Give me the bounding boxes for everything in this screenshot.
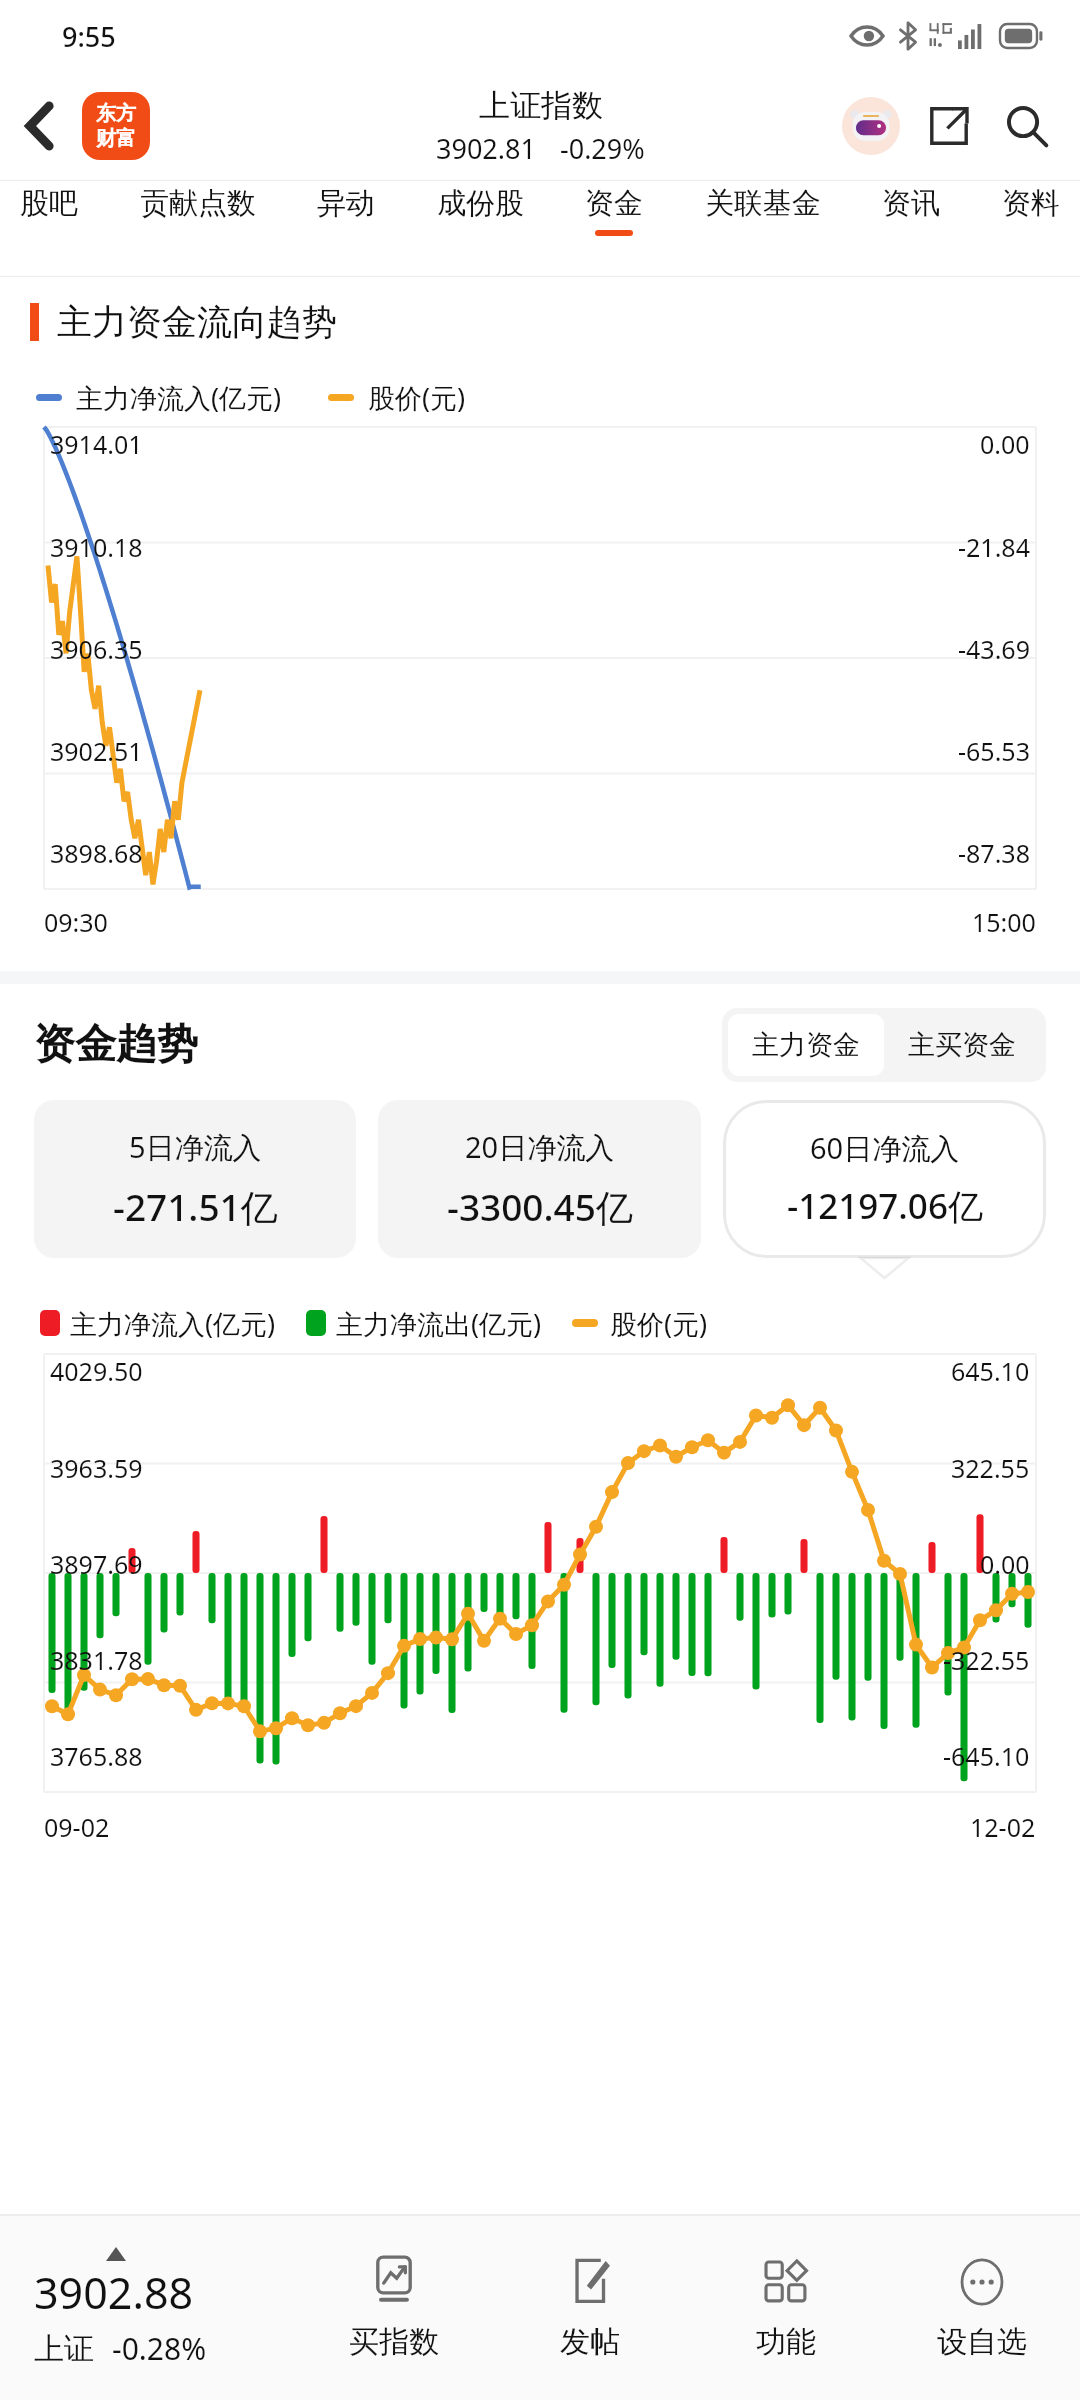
staticText: 0.00 xyxy=(980,427,1030,461)
staticText: 成份股 xyxy=(437,185,524,222)
staticText: 0.00 xyxy=(980,1547,1030,1581)
staticText: -271.51亿 xyxy=(113,1181,278,1232)
button[interactable]: 设自选 xyxy=(884,2216,1080,2400)
button[interactable]: 3902.88 xyxy=(0,2216,296,2400)
staticText: 上证指数 xyxy=(479,86,603,125)
staticText: 12-02 xyxy=(970,1810,1036,1844)
staticText: 09:30 xyxy=(44,905,108,939)
staticText: 3906.35 xyxy=(50,632,143,666)
staticText: 5日净流入 xyxy=(129,1127,262,1167)
button[interactable]: 发帖 xyxy=(492,2216,688,2400)
staticText: 资讯 xyxy=(882,185,940,222)
staticText: 资料 xyxy=(1002,185,1060,222)
staticText: 9:55 xyxy=(62,18,116,55)
staticText: 09-02 xyxy=(44,1810,110,1844)
staticText: 4029.50 xyxy=(50,1354,143,1388)
button[interactable]: 5日净流入 xyxy=(34,1100,356,1258)
button[interactable]: 主力资金 xyxy=(728,1014,884,1076)
staticText: 20日净流入 xyxy=(465,1127,615,1167)
button[interactable]: East Money xyxy=(82,92,150,160)
staticText: 15:00 xyxy=(972,905,1036,939)
button[interactable]: 异动 xyxy=(315,181,377,240)
staticText: -0.29% xyxy=(560,130,645,167)
staticText: -87.38 xyxy=(958,836,1030,870)
staticText: 645.10 xyxy=(951,1354,1030,1388)
staticText: 主力净流入(亿元) xyxy=(76,379,282,416)
staticText: 东方 xyxy=(96,101,136,126)
button[interactable]: AI assistant xyxy=(838,93,904,159)
staticText: 股价(元) xyxy=(610,1305,708,1342)
staticText: 上证 xyxy=(34,2330,94,2368)
button[interactable]: 功能 xyxy=(688,2216,884,2400)
button[interactable]: 关联基金 xyxy=(703,181,823,240)
staticText: -322.55 xyxy=(943,1643,1030,1677)
staticText: 股价(元) xyxy=(368,379,466,416)
button[interactable]: 资讯 xyxy=(880,181,942,240)
staticText: 主力资金流向趋势 xyxy=(57,300,337,344)
button[interactable]: 成份股 xyxy=(435,181,526,240)
button[interactable]: 主买资金 xyxy=(884,1014,1040,1076)
staticText: 3963.59 xyxy=(50,1451,143,1485)
staticText: -21.84 xyxy=(958,530,1030,564)
staticText: 买指数 xyxy=(349,2323,439,2361)
staticText: 关联基金 xyxy=(705,185,821,222)
button[interactable]: Share xyxy=(918,95,980,157)
staticText: -645.10 xyxy=(943,1739,1030,1773)
staticText: 异动 xyxy=(317,185,375,222)
staticText: 3831.78 xyxy=(50,1643,143,1677)
staticText: 3902.88 xyxy=(34,2263,194,2322)
button[interactable]: 20日净流入 xyxy=(378,1100,701,1258)
staticText: 60日净流入 xyxy=(810,1128,960,1168)
staticText: 设自选 xyxy=(937,2323,1027,2361)
staticText: 资金 xyxy=(585,185,643,222)
staticText: 322.55 xyxy=(951,1451,1030,1485)
button[interactable]: 60日净流入 xyxy=(723,1100,1046,1258)
staticText: 主力净流出(亿元) xyxy=(336,1305,542,1342)
staticText: -12197.06亿 xyxy=(787,1182,983,1230)
staticText: 股吧 xyxy=(20,185,78,222)
staticText: 发帖 xyxy=(560,2323,620,2361)
staticText: -43.69 xyxy=(958,632,1030,666)
staticText: -0.28% xyxy=(112,2328,207,2369)
staticText: 资金趋势 xyxy=(34,1019,198,1071)
staticText: 3898.68 xyxy=(50,836,143,870)
staticText: 功能 xyxy=(756,2323,816,2361)
staticText: 主力净流入(亿元) xyxy=(70,1305,276,1342)
staticText: 3902.51 xyxy=(50,734,143,768)
button[interactable]: 贡献点数 xyxy=(138,181,258,240)
button[interactable]: 资料 xyxy=(1000,181,1062,240)
staticText: 3765.88 xyxy=(50,1739,143,1773)
staticText: 贡献点数 xyxy=(140,185,256,222)
button[interactable]: 资金 xyxy=(583,181,645,240)
staticText: 主买资金 xyxy=(908,1028,1016,1062)
staticText: -65.53 xyxy=(958,734,1030,768)
button[interactable]: 买指数 xyxy=(296,2216,492,2400)
staticText: 主力资金 xyxy=(752,1028,860,1062)
button[interactable]: Search xyxy=(996,95,1058,157)
staticText: 财富 xyxy=(96,126,136,151)
staticText: 3897.69 xyxy=(50,1547,143,1581)
staticText: 3910.18 xyxy=(50,530,143,564)
button[interactable]: Back xyxy=(8,94,72,158)
staticText: 3914.01 xyxy=(50,427,143,461)
staticText: 3902.81 xyxy=(436,130,536,167)
staticText: -3300.45亿 xyxy=(447,1181,633,1232)
button[interactable]: 股吧 xyxy=(18,181,80,240)
